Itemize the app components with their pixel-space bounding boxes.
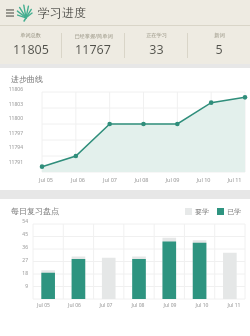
staticText: 学习进度 (38, 5, 86, 20)
staticText: 27 (14, 257, 28, 264)
staticText: 正在学习 (146, 32, 167, 39)
staticText: Jul 05 (30, 176, 62, 183)
staticText: 11767 (75, 41, 111, 58)
staticText: 已经掌握/简单词 (74, 32, 113, 39)
staticText: 11800 (8, 115, 23, 122)
button[interactable]: 每日复习盘点 (0, 199, 250, 336)
staticText: Jul 07 (90, 302, 122, 309)
button[interactable]: 新词 (188, 26, 250, 64)
button[interactable]: 进步曲线 (0, 68, 250, 190)
staticText: 11791 (8, 159, 23, 166)
staticText: Jul 05 (28, 302, 59, 309)
staticText: Jul 06 (59, 302, 90, 309)
staticText: 9 (14, 283, 28, 290)
staticText: Jul 09 (157, 176, 188, 183)
button[interactable]: App logo (16, 3, 35, 22)
staticText: Jul 08 (126, 176, 157, 183)
button[interactable]: Menu (3, 6, 16, 19)
staticText: Jul 11 (218, 302, 250, 309)
staticText: 54 (14, 218, 28, 225)
button[interactable]: 单词总数 (0, 26, 61, 64)
staticText: Jul 06 (62, 176, 94, 183)
staticText: 18 (14, 270, 28, 277)
staticText: 5 (215, 41, 223, 58)
staticText: 11805 (13, 41, 49, 58)
staticText: 11803 (8, 101, 23, 108)
staticText: 每日复习盘点 (11, 206, 59, 216)
staticText: 11794 (8, 144, 23, 151)
staticText: Jul 11 (219, 176, 250, 183)
staticText: 已学 (227, 207, 241, 216)
staticText: 36 (14, 244, 28, 251)
button[interactable]: 已经掌握/简单词 (62, 26, 124, 64)
staticText: 45 (14, 231, 28, 238)
button[interactable]: 要学 (185, 207, 241, 216)
staticText: 33 (149, 41, 164, 58)
staticText: 11797 (8, 130, 23, 137)
staticText: Jul 09 (154, 302, 186, 309)
staticText: 11806 (8, 86, 23, 93)
staticText: Jul 08 (122, 302, 154, 309)
staticText: Jul 10 (188, 176, 219, 183)
staticText: Jul 07 (94, 176, 126, 183)
staticText: 单词总数 (20, 32, 41, 39)
button[interactable]: 正在学习 (125, 26, 187, 64)
staticText: 要学 (195, 207, 209, 216)
staticText: 新词 (214, 32, 225, 39)
staticText: 进步曲线 (11, 74, 43, 84)
staticText: Jul 10 (186, 302, 218, 309)
